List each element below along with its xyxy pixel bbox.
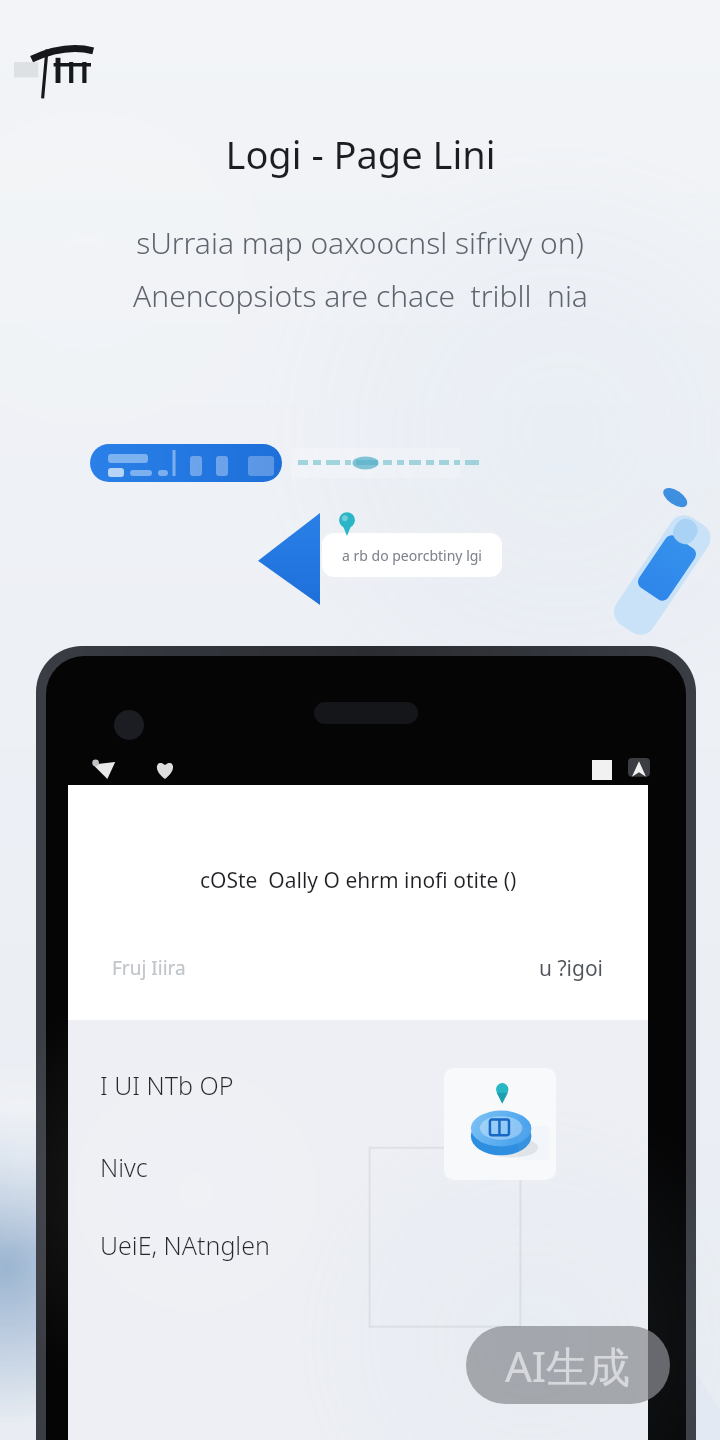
button[interactable]: Nivc — [100, 1148, 148, 1186]
staticText: AI生成 — [505, 1337, 631, 1394]
button[interactable]: Brand logo — [14, 34, 124, 104]
staticText: Logi - Page Lini — [225, 128, 496, 180]
button[interactable]: Fruj Iiira — [92, 924, 624, 1012]
staticText: I UI NTb OP — [100, 1068, 234, 1102]
button[interactable]: UeiE, NAtnglen — [100, 1226, 270, 1264]
staticText: Fruj Iiira — [112, 955, 186, 981]
staticText: Nivc — [100, 1150, 148, 1184]
staticText: sUrraia map oaxoocnsl sifrivy on) — [136, 222, 584, 263]
button[interactable]: a rb do peorcbtiny lgi — [322, 533, 502, 577]
button[interactable]: Feature tile — [444, 1068, 556, 1180]
staticText: Anencopsiots are chace tribll nia — [133, 275, 588, 316]
button[interactable]: Previous — [258, 513, 320, 605]
button[interactable]: I UI NTb OP — [100, 1066, 234, 1104]
staticText: UeiE, NAtnglen — [100, 1228, 270, 1262]
staticText: cOSte Oally O ehrm inofi otite () — [200, 866, 517, 895]
button[interactable]: Ghost label — [292, 448, 460, 478]
staticText: u ?igoi — [539, 954, 604, 983]
staticText: a rb do peorcbtiny lgi — [342, 546, 482, 565]
button[interactable] — [90, 444, 282, 482]
